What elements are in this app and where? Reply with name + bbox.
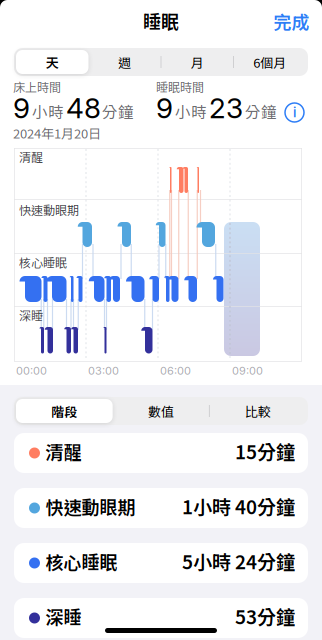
staticText: 6個月 bbox=[253, 53, 286, 71]
button[interactable]: 快速動眼期 bbox=[14, 488, 308, 528]
staticText: 睡眠時間 bbox=[156, 78, 204, 95]
staticText: 53分鐘 bbox=[235, 602, 295, 630]
button[interactable]: 比較 bbox=[209, 397, 306, 425]
staticText: 核心睡眠 bbox=[19, 253, 67, 271]
staticText: 階段 bbox=[51, 402, 77, 420]
staticText: 分鐘 bbox=[245, 100, 277, 122]
staticText: 5小時 24分鐘 bbox=[182, 547, 295, 575]
staticText: 完成 bbox=[273, 8, 309, 34]
staticText: 數值 bbox=[148, 402, 174, 420]
staticText: 深睡 bbox=[45, 603, 81, 630]
button[interactable]: 完成 bbox=[273, 8, 309, 34]
staticText: 週 bbox=[118, 53, 131, 71]
button[interactable]: 關於睡眠 bbox=[285, 103, 304, 122]
staticText: 小時 bbox=[32, 100, 64, 122]
staticText: 快速動眼期 bbox=[19, 201, 79, 218]
staticText: 清醒 bbox=[45, 438, 81, 465]
button[interactable]: 階段 bbox=[16, 397, 113, 425]
staticText: i bbox=[293, 105, 296, 120]
staticText: 清醒 bbox=[19, 148, 43, 165]
staticText: 15分鐘 bbox=[235, 437, 295, 465]
staticText: 快速動眼期 bbox=[45, 493, 135, 520]
button[interactable]: 月 bbox=[161, 48, 233, 76]
button[interactable]: 6個月 bbox=[233, 48, 306, 76]
staticText: 23 bbox=[209, 91, 243, 125]
staticText: 06:00 bbox=[160, 364, 191, 377]
staticText: 9 bbox=[13, 91, 30, 125]
staticText: 48 bbox=[66, 91, 101, 125]
button[interactable]: 核心睡眠 bbox=[14, 543, 308, 583]
staticText: 月 bbox=[191, 53, 204, 71]
staticText: 09:00 bbox=[232, 364, 263, 377]
staticText: 核心睡眠 bbox=[45, 548, 117, 575]
staticText: 03:00 bbox=[88, 364, 119, 377]
button[interactable]: 週 bbox=[88, 48, 161, 76]
staticText: 比較 bbox=[245, 402, 271, 420]
button[interactable]: 天 bbox=[16, 48, 88, 76]
staticText: 00:00 bbox=[16, 364, 47, 377]
button[interactable]: 清醒 bbox=[14, 433, 308, 473]
staticText: 9 bbox=[156, 91, 173, 125]
button[interactable]: 數值 bbox=[113, 397, 209, 425]
staticText: 2024年1月20日 bbox=[13, 123, 101, 142]
staticText: 深睡 bbox=[19, 306, 43, 324]
button[interactable]: 深睡 bbox=[14, 598, 308, 638]
staticText: 1小時 40分鐘 bbox=[182, 492, 295, 520]
staticText: 小時 bbox=[175, 100, 207, 122]
staticText: 床上時間 bbox=[13, 78, 61, 95]
staticText: 分鐘 bbox=[102, 100, 134, 122]
staticText: 睡眠 bbox=[143, 8, 179, 34]
staticText: 天 bbox=[46, 53, 59, 71]
